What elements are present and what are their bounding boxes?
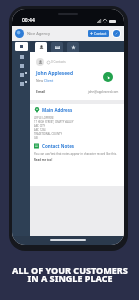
button[interactable]: Tab 2 <box>51 42 63 52</box>
staticText: Email <box>36 89 46 94</box>
staticText: john@appleseed.com <box>88 90 119 94</box>
staticText: Nice Agency <box>27 31 50 36</box>
staticText: TRADITIONAL COUNTY <box>34 132 62 136</box>
button[interactable]: Nav item 3 <box>15 71 28 79</box>
staticText: ALL OF YOUR CUSTOMERS <box>12 264 128 276</box>
staticText: You can use/test that notes appear in ch… <box>34 152 117 156</box>
button[interactable]: Contact <box>88 30 109 37</box>
staticText: 17 HIGH STREET, CRAFTY VALLEY <box>34 120 74 124</box>
staticText: ABC 1234 <box>34 128 46 132</box>
staticText: Contact Notes <box>42 143 75 149</box>
staticText: LIFFLE LOFFRISE <box>34 116 54 120</box>
button[interactable]: Workspace logo <box>15 29 24 38</box>
staticText: ABC CITY <box>34 124 46 128</box>
staticText: John Appleseed <box>36 70 73 77</box>
button[interactable]: Explore <box>113 30 120 37</box>
staticText: Client <box>44 78 54 83</box>
staticText: Contact <box>94 31 107 36</box>
button[interactable]: Tab 1 <box>35 42 47 52</box>
staticText: Main Address <box>42 107 73 113</box>
button[interactable]: Nav item 4 <box>15 80 28 88</box>
button[interactable]: Nav item 1 <box>15 53 28 61</box>
staticText: IN A SINGLE PLACE <box>27 272 113 284</box>
staticText: New <box>36 78 44 83</box>
button[interactable]: Tab 3 <box>67 42 79 52</box>
staticText: Read me too! <box>34 158 53 162</box>
button[interactable]: Call <box>103 72 113 82</box>
staticText: 0 Contacts <box>51 60 66 64</box>
button[interactable]: Nav item 2 <box>15 62 28 70</box>
staticText: GB <box>34 136 38 140</box>
button[interactable]: Dashboard <box>15 42 28 51</box>
staticText: 00:44 <box>22 17 35 24</box>
